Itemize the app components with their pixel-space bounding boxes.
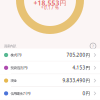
staticText: 0円 xyxy=(82,90,90,96)
button[interactable]: 株式(円) xyxy=(0,49,100,61)
staticText: +0.17 % xyxy=(41,5,59,11)
button[interactable]: Help xyxy=(89,42,97,50)
staticText: 資産内訳 xyxy=(4,44,16,48)
button[interactable]: 現金 xyxy=(0,74,100,87)
staticText: 投資信託(円) xyxy=(10,65,27,70)
staticText: 株式(円) xyxy=(10,53,21,57)
staticText: 4,153円 xyxy=(72,65,90,71)
button[interactable]: 投資信託(円) xyxy=(0,61,100,74)
staticText: 705,200円 xyxy=(66,52,90,58)
button[interactable]: 信用建余力(円) xyxy=(0,87,100,100)
staticText: ? xyxy=(92,43,94,49)
staticText: 信用建余力(円) xyxy=(10,91,30,96)
staticText: 現金 xyxy=(10,78,16,83)
staticText: +18,553円 xyxy=(33,0,66,7)
staticText: 9,833,490円 xyxy=(62,77,90,84)
